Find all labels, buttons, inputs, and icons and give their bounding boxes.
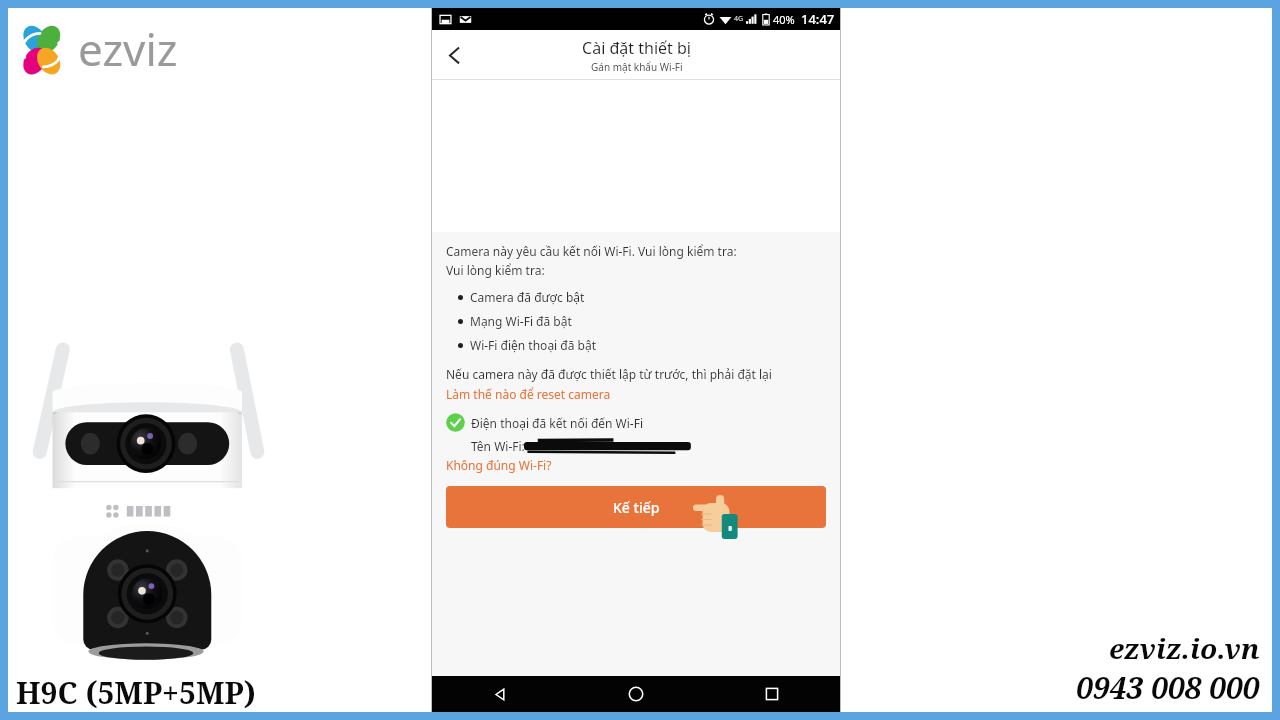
staticText: Mạng Wi-Fi đã bật: [470, 313, 572, 329]
staticText: 0943 008 000: [1076, 667, 1260, 708]
staticText: H9C (5MP+5MP): [16, 672, 256, 713]
staticText: 40%: [773, 12, 795, 27]
button[interactable]: Back: [432, 676, 568, 712]
staticText: Không đúng Wi-Fi?: [446, 457, 552, 473]
staticText: Nếu camera này đã được thiết lập từ trướ…: [446, 366, 772, 382]
staticText: Kế tiếp: [613, 498, 660, 517]
button[interactable]: Kế tiếp: [446, 486, 826, 528]
staticText: 4G: [734, 14, 744, 24]
staticText: Gán mật khẩu Wi-Fi: [591, 60, 683, 74]
button[interactable]: Back: [432, 33, 476, 77]
staticText: Vui lòng kiểm tra:: [446, 262, 545, 278]
staticText: 14:47: [801, 10, 835, 28]
staticText: ezviz.io.vn: [1109, 629, 1260, 667]
staticText: Làm thế nào để reset camera: [446, 386, 611, 402]
staticText: Cài đặt thiết bị: [582, 37, 691, 59]
button[interactable]: Làm thế nào để reset camera: [446, 386, 611, 402]
button[interactable]: Home: [568, 676, 704, 712]
staticText: Tên Wi-Fi:: [471, 438, 525, 454]
staticText: Wi-Fi điện thoại đã bật: [470, 337, 597, 353]
staticText: Camera này yêu cầu kết nối Wi-Fi. Vui lò…: [446, 243, 737, 259]
staticText: Camera đã được bật: [470, 289, 585, 305]
button[interactable]: Recent apps: [704, 676, 840, 712]
staticText: ezviz: [78, 19, 178, 79]
staticText: Điện thoại đã kết nối đến Wi-Fi: [471, 415, 644, 431]
button[interactable]: Không đúng Wi-Fi?: [446, 457, 552, 473]
